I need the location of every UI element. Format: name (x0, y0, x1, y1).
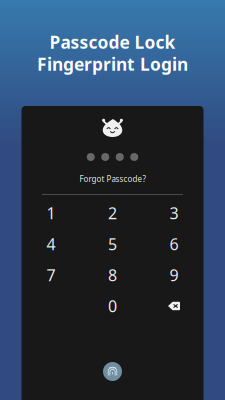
staticText: 4 (46, 233, 55, 255)
staticText: 6 (169, 233, 178, 255)
button[interactable]: 2 (82, 197, 143, 228)
staticText: 0 (108, 295, 117, 317)
button[interactable]: 1 (20, 197, 82, 228)
button[interactable]: 9 (143, 259, 205, 290)
staticText: 5 (108, 233, 117, 255)
button[interactable]: 7 (20, 259, 82, 290)
staticText: 2 (108, 202, 117, 224)
staticText: 9 (169, 264, 178, 286)
staticText: 3 (169, 202, 178, 224)
button[interactable]: Forgot Passcode? (52, 172, 172, 186)
button[interactable]: 8 (82, 259, 143, 290)
staticText: 1 (46, 202, 55, 224)
button[interactable]: Delete (143, 290, 205, 321)
staticText: Forgot Passcode? (79, 174, 145, 184)
button[interactable]: Fingerprint login (103, 362, 122, 381)
button[interactable]: 3 (143, 197, 205, 228)
staticText: Fingerprint Login (37, 52, 188, 75)
button[interactable]: 0 (82, 290, 143, 321)
button[interactable]: 4 (20, 228, 82, 259)
button[interactable]: 6 (143, 228, 205, 259)
staticText: Passcode Lock (49, 30, 175, 53)
staticText: 8 (108, 264, 117, 286)
button[interactable]: 5 (82, 228, 143, 259)
staticText: 7 (46, 264, 55, 286)
